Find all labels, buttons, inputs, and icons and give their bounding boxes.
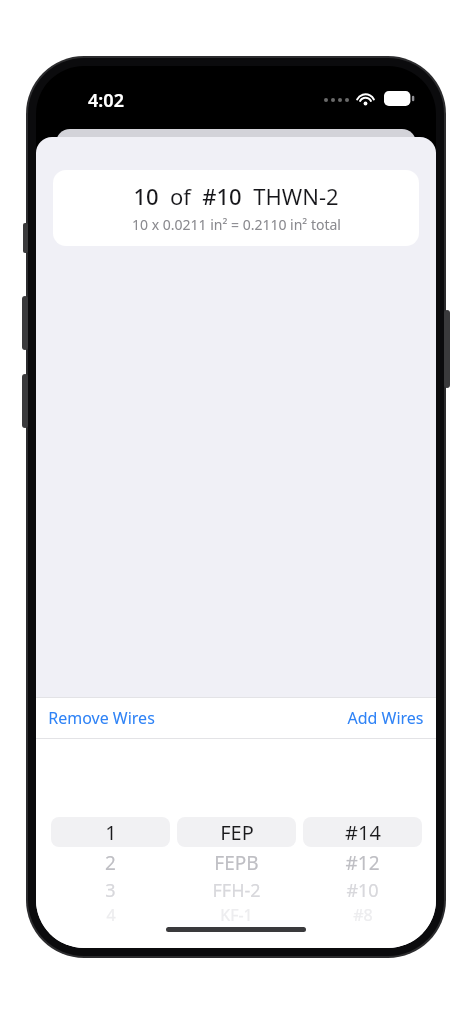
staticText: Remove Wires bbox=[48, 707, 155, 729]
button[interactable]: FEP bbox=[177, 817, 296, 926]
staticText: of bbox=[170, 181, 191, 211]
staticText: 2 bbox=[105, 850, 116, 876]
staticText: 10 x 0.0211 in² = 0.2110 in² total bbox=[132, 215, 341, 234]
staticText: 1 bbox=[105, 819, 117, 846]
staticText: 10 bbox=[133, 181, 159, 211]
staticText: 4:02 bbox=[88, 88, 124, 113]
button[interactable]: Add Wires bbox=[335, 699, 436, 737]
staticText: THWN-2 bbox=[253, 181, 339, 211]
button[interactable]: 10 bbox=[53, 170, 419, 246]
button[interactable]: Remove Wires bbox=[36, 699, 167, 737]
staticText: 4 bbox=[106, 904, 116, 926]
staticText: 3 bbox=[105, 878, 116, 903]
staticText: FEPB bbox=[214, 850, 259, 876]
button[interactable]: #14 bbox=[303, 817, 422, 926]
staticText: #8 bbox=[353, 904, 373, 926]
staticText: KF-1 bbox=[220, 904, 253, 926]
staticText: #10 bbox=[346, 878, 379, 903]
button[interactable]: 1 bbox=[51, 817, 170, 926]
staticText: Add Wires bbox=[347, 707, 424, 729]
staticText: FEP bbox=[220, 819, 254, 846]
staticText: FFH-2 bbox=[212, 878, 261, 903]
staticText: #14 bbox=[345, 819, 381, 846]
staticText: #12 bbox=[345, 850, 380, 876]
staticText: #10 bbox=[202, 181, 242, 211]
